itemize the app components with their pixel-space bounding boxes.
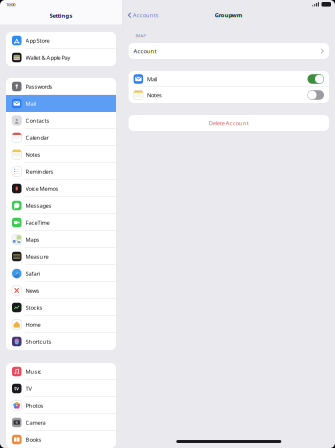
button[interactable]: Mail xyxy=(129,71,329,87)
staticText: Safari xyxy=(25,270,39,277)
button[interactable]: Voice Memos xyxy=(6,180,116,197)
staticText: Notes xyxy=(25,151,40,158)
button[interactable]: Passwords xyxy=(6,78,116,95)
button[interactable]: Camera xyxy=(6,414,116,431)
staticText: TV xyxy=(25,385,31,392)
staticText: Settings xyxy=(49,12,72,19)
button[interactable]: News xyxy=(6,282,116,299)
button[interactable]: FaceTime xyxy=(6,214,116,231)
button[interactable]: Home xyxy=(6,316,116,333)
staticText: Calendar xyxy=(25,134,48,141)
staticText: Mail xyxy=(25,100,35,107)
button[interactable]: Shortcuts xyxy=(6,333,116,350)
button[interactable]: Account xyxy=(123,43,335,59)
button[interactable]: Mail xyxy=(6,95,116,112)
button[interactable]: Wallet & Apple Pay xyxy=(6,49,116,66)
button[interactable]: Calendar xyxy=(6,129,116,146)
staticText: FaceTime xyxy=(25,219,49,226)
staticText: Books xyxy=(25,436,41,443)
staticText: Contacts xyxy=(25,117,49,124)
button[interactable]: Messages xyxy=(6,197,116,214)
staticText: Messages xyxy=(25,202,51,209)
button[interactable]: Notes xyxy=(6,146,116,163)
button[interactable]: Contacts xyxy=(6,112,116,129)
staticText: Wallet & Apple Pay xyxy=(25,54,70,61)
button[interactable]: Safari xyxy=(6,265,116,282)
staticText: Groupwm xyxy=(215,11,243,19)
button[interactable]: App Store xyxy=(6,32,116,49)
staticText: Camera xyxy=(25,419,45,426)
staticText: Reminders xyxy=(25,168,53,175)
staticText: IMAP xyxy=(136,32,147,38)
staticText: App Store xyxy=(25,37,49,44)
button[interactable]: Notes xyxy=(129,87,329,103)
staticText: Maps xyxy=(25,236,39,243)
staticText: Photos xyxy=(25,402,43,409)
staticText: Home xyxy=(25,321,40,328)
staticText: Music xyxy=(25,368,41,375)
button[interactable]: Music xyxy=(6,363,116,380)
staticText: Mail xyxy=(147,75,157,83)
button[interactable]: Accounts xyxy=(123,9,159,21)
button[interactable]: Reminders xyxy=(6,163,116,180)
staticText: 10:00 xyxy=(6,1,15,7)
button[interactable]: Maps xyxy=(6,231,116,248)
button[interactable]: tv xyxy=(6,380,116,397)
button[interactable]: Books xyxy=(6,431,116,448)
staticText: Measure xyxy=(25,253,48,260)
button[interactable]: Stocks xyxy=(6,299,116,316)
staticText: Account xyxy=(134,47,157,55)
button[interactable]: Photos xyxy=(6,397,116,414)
staticText: Voice Memos xyxy=(25,185,58,192)
staticText: Accounts xyxy=(133,11,159,19)
staticText: Shortcuts xyxy=(25,338,51,345)
staticText: Stocks xyxy=(25,304,42,311)
staticText: Passwords xyxy=(25,83,52,90)
staticText: Delete Account xyxy=(209,119,249,127)
staticText: Notes xyxy=(147,91,162,99)
button[interactable]: Measure xyxy=(6,248,116,265)
button[interactable]: Delete Account xyxy=(123,115,335,131)
staticText: News xyxy=(25,287,39,294)
staticText: tv xyxy=(14,385,19,392)
